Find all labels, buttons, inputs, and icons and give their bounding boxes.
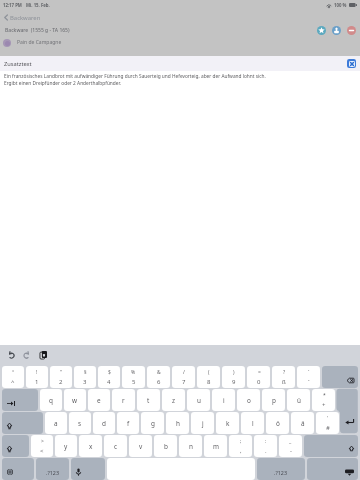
staticText: 9 xyxy=(232,378,236,386)
staticText: h xyxy=(176,419,180,428)
staticText: i xyxy=(223,396,225,405)
button[interactable]: ° xyxy=(2,366,24,388)
button[interactable]: k xyxy=(216,412,239,434)
button[interactable]: ! xyxy=(26,366,48,388)
staticText: 6 xyxy=(157,378,161,386)
staticText: - xyxy=(290,447,292,455)
button[interactable]: q xyxy=(40,389,62,411)
button[interactable]: Back to Backwaren xyxy=(2,12,43,23)
button[interactable]: d xyxy=(93,412,115,434)
staticText: r xyxy=(122,396,125,405)
button[interactable]: o xyxy=(237,389,260,411)
staticText: y xyxy=(64,442,68,451)
button[interactable]: > xyxy=(31,435,53,457)
button[interactable]: h xyxy=(166,412,189,434)
button[interactable]: p xyxy=(262,389,285,411)
button[interactable]: .?123 xyxy=(257,458,305,480)
button[interactable]: Redo xyxy=(23,352,30,358)
button[interactable]: ( xyxy=(197,366,220,388)
button[interactable]: x xyxy=(79,435,102,457)
button[interactable]: Remove xyxy=(347,26,356,35)
button[interactable]: Undo xyxy=(8,352,15,358)
button[interactable]: y xyxy=(55,435,77,457)
staticText: # xyxy=(326,424,330,432)
staticText: Mi. 15. Feb. xyxy=(26,2,50,8)
button[interactable]: $ xyxy=(98,366,120,388)
button[interactable]: " xyxy=(50,366,72,388)
staticText: z xyxy=(172,396,176,405)
staticText: t xyxy=(147,396,150,405)
button[interactable]: _ xyxy=(279,435,302,457)
staticText: . xyxy=(265,447,267,455)
staticText: 8 xyxy=(207,378,211,386)
button[interactable]: a xyxy=(45,412,67,434)
staticText: < xyxy=(40,447,44,455)
button[interactable]: u xyxy=(187,389,210,411)
button[interactable]: w xyxy=(64,389,86,411)
button[interactable]: g xyxy=(141,412,164,434)
button[interactable]: caps xyxy=(2,435,29,457)
button[interactable]: ü xyxy=(287,389,310,411)
staticText: Pain de Campagne xyxy=(17,39,62,46)
staticText: o xyxy=(247,396,251,405)
staticText: % xyxy=(131,369,136,376)
staticText: g xyxy=(151,419,155,428)
button[interactable]: dismiss xyxy=(307,458,358,480)
staticText: m xyxy=(213,442,219,451)
staticText: k xyxy=(226,419,230,428)
staticText: ° xyxy=(12,369,15,376)
button[interactable]: j xyxy=(191,412,214,434)
staticText: Zusatztext xyxy=(4,60,32,68)
button[interactable]: s xyxy=(69,412,91,434)
button[interactable]: .?123 xyxy=(36,458,69,480)
button[interactable]: = xyxy=(247,366,270,388)
button[interactable]: e xyxy=(88,389,110,411)
button[interactable]: / xyxy=(172,366,195,388)
button[interactable]: shift xyxy=(304,435,358,457)
button[interactable]: r xyxy=(112,389,135,411)
button[interactable]: Paste xyxy=(40,351,47,359)
button[interactable]: b xyxy=(154,435,177,457)
button[interactable]: n xyxy=(179,435,202,457)
button[interactable]: ; xyxy=(229,435,252,457)
staticText: e xyxy=(97,396,101,405)
button[interactable]: Close xyxy=(347,59,356,68)
button[interactable]: ) xyxy=(222,366,245,388)
staticText: v xyxy=(139,442,143,451)
button[interactable]: ' xyxy=(316,412,339,434)
button[interactable]: ö xyxy=(266,412,289,434)
button[interactable]: % xyxy=(122,366,145,388)
button[interactable]: c xyxy=(104,435,127,457)
staticText: ( xyxy=(208,369,210,376)
button[interactable]: z xyxy=(162,389,185,411)
staticText: , xyxy=(240,447,242,455)
button[interactable]: Favourite xyxy=(317,26,326,35)
button[interactable]: ? xyxy=(272,366,295,388)
button[interactable]: v xyxy=(129,435,152,457)
button[interactable]: * xyxy=(312,389,335,411)
button[interactable]: ä xyxy=(291,412,314,434)
button[interactable]: caps xyxy=(2,412,43,434)
staticText: 5 xyxy=(132,378,136,386)
staticText: ö xyxy=(276,419,280,428)
button[interactable]: : xyxy=(254,435,277,457)
button[interactable]: § xyxy=(74,366,96,388)
button[interactable]: globe xyxy=(2,458,34,480)
button[interactable]: i xyxy=(212,389,235,411)
button[interactable]: mic xyxy=(71,458,105,480)
button[interactable]: t xyxy=(137,389,160,411)
button[interactable]: f xyxy=(117,412,139,434)
button[interactable]: l xyxy=(241,412,264,434)
button[interactable]: backspace xyxy=(322,366,358,388)
button[interactable]: & xyxy=(147,366,170,388)
button[interactable]: ` xyxy=(297,366,320,388)
staticText: .?123 xyxy=(46,469,60,476)
button[interactable]: Return xyxy=(0,345,360,480)
staticText: l xyxy=(252,419,254,428)
button[interactable]: m xyxy=(204,435,227,457)
button[interactable]: tab xyxy=(2,389,38,411)
staticText: ? xyxy=(283,369,286,376)
button[interactable]: Share xyxy=(332,26,341,35)
staticText: " xyxy=(60,369,63,376)
